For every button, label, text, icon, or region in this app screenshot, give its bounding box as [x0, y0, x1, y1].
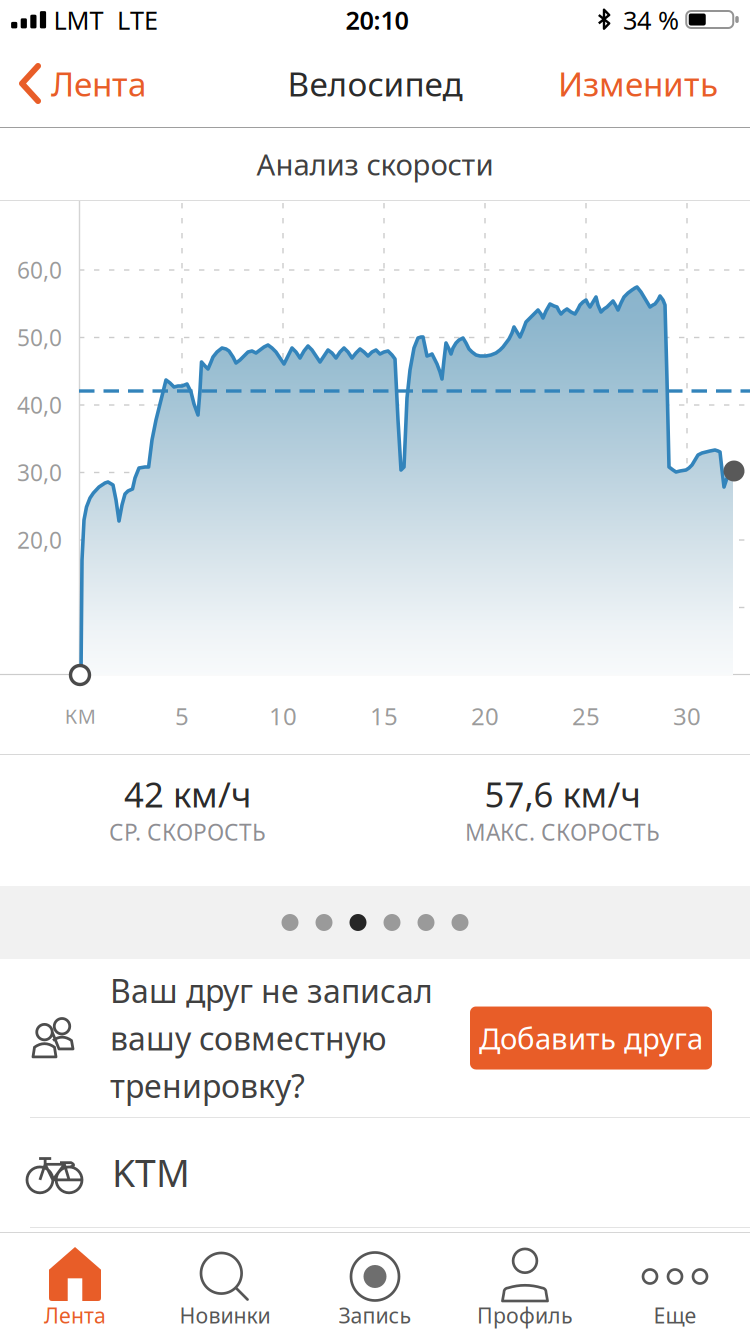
staticText: 20:10: [345, 3, 408, 37]
staticText: Велосипед: [287, 61, 462, 106]
staticText: 30: [673, 700, 701, 732]
staticText: 20,0: [17, 525, 62, 555]
staticText: тренировку?: [110, 1064, 305, 1107]
staticText: 10: [269, 700, 297, 732]
button[interactable]: Добавить друга: [470, 1006, 712, 1069]
staticText: Лента: [44, 1301, 106, 1329]
staticText: вашу совместную: [110, 1017, 387, 1059]
staticText: СР. СКОРОСТЬ: [109, 817, 266, 847]
staticText: 50,0: [17, 322, 62, 352]
staticText: Запись: [338, 1301, 411, 1329]
button[interactable]: Запись: [300, 1233, 450, 1334]
staticText: 20: [471, 700, 499, 732]
button[interactable]: KTM: [0, 1118, 750, 1227]
button[interactable]: Новинки: [150, 1233, 300, 1334]
staticText: Изменить: [558, 61, 718, 106]
button[interactable]: Еще: [600, 1233, 750, 1334]
staticText: 40,0: [17, 390, 62, 420]
staticText: КМ: [65, 703, 96, 729]
staticText: 34 %: [623, 3, 679, 37]
staticText: LMT: [54, 3, 104, 37]
staticText: Лента: [51, 61, 147, 106]
staticText: Новинки: [179, 1301, 270, 1329]
staticText: Анализ скорости: [256, 144, 493, 183]
staticText: 25: [572, 700, 600, 732]
button[interactable]: Лента: [0, 1233, 150, 1334]
staticText: Добавить друга: [479, 1018, 703, 1057]
staticText: KTM: [112, 1148, 190, 1197]
staticText: 15: [370, 700, 398, 732]
staticText: 60,0: [17, 255, 62, 285]
staticText: МАКС. СКОРОСТЬ: [465, 817, 660, 847]
staticText: 42 км/ч: [124, 771, 251, 817]
staticText: 5: [175, 700, 189, 732]
staticText: Профиль: [477, 1301, 573, 1329]
staticText: LTE: [117, 3, 158, 37]
button[interactable]: Профиль: [450, 1233, 600, 1334]
staticText: Ваш друг не записал: [110, 969, 433, 1012]
button[interactable]: Лента: [0, 40, 157, 127]
staticText: 30,0: [17, 457, 62, 487]
staticText: Еще: [653, 1301, 696, 1329]
button[interactable]: Изменить: [542, 40, 750, 127]
staticText: 57,6 км/ч: [484, 771, 640, 817]
